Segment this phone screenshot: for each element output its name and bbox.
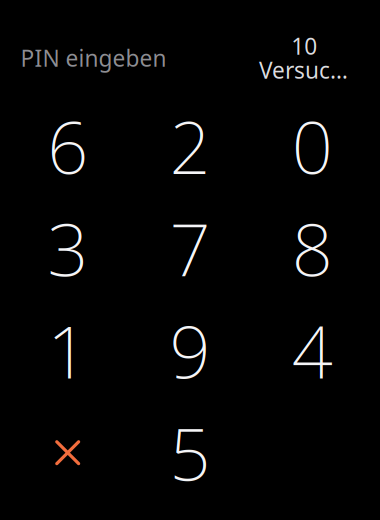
button[interactable]: 0: [251, 95, 373, 197]
button[interactable]: 1: [7, 299, 129, 402]
button[interactable]: 9: [129, 299, 251, 402]
button[interactable]: 4: [251, 299, 373, 402]
staticText: 9: [169, 303, 210, 398]
staticText: 1: [47, 303, 88, 398]
staticText: 0: [292, 98, 333, 194]
staticText: 7: [169, 200, 210, 296]
staticText: 2: [169, 98, 210, 194]
staticText: 6: [47, 98, 88, 194]
button[interactable]: 6: [7, 95, 129, 197]
button[interactable]: Delete: [7, 402, 129, 504]
button[interactable]: 8: [251, 197, 373, 299]
staticText: 3: [47, 200, 88, 296]
staticText: 10 Versuche: [259, 31, 349, 85]
staticText: 4: [292, 303, 333, 398]
staticText: PIN eingeben: [20, 43, 166, 73]
button[interactable]: 3: [7, 197, 129, 299]
button[interactable]: 7: [129, 197, 251, 299]
staticText: 5: [169, 405, 210, 500]
button[interactable]: 2: [129, 95, 251, 197]
button[interactable]: 5: [129, 402, 251, 504]
staticText: 8: [292, 200, 333, 296]
